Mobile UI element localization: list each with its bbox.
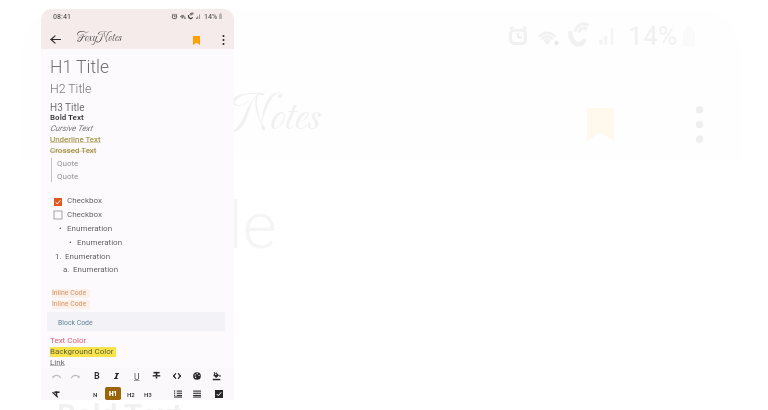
staticText: Checkbox [67,210,103,219]
staticText: Inline Code [52,289,87,297]
staticText: H1 Title [50,57,110,78]
staticText: Cursive Text [50,124,93,133]
staticText: Enumeration [65,252,111,261]
button[interactable]: Heading 2 [123,386,138,400]
button[interactable]: Text colour [189,368,204,383]
staticText: 1. [55,252,62,261]
staticText: 08:41 [67,20,135,51]
staticText: 14% [628,20,678,51]
staticText: Underline Text [50,135,101,144]
button[interactable]: Checklist [211,386,226,400]
staticText: H1 [109,390,118,398]
staticText: Block Code [58,319,93,327]
staticText: U [134,372,140,382]
staticText: H2 [127,391,135,398]
staticText: H3 Title [57,354,186,398]
staticText: H1 Title [57,188,277,264]
button[interactable]: Numbered list [170,386,185,400]
button[interactable]: Bookmark [563,87,637,161]
button[interactable]: Heading 3 [140,386,155,400]
button[interactable]: More options [213,30,233,50]
button[interactable]: Back [45,29,65,49]
staticText: H3 [144,391,152,398]
staticText: FoxyNotes [77,31,122,46]
staticText: B [94,371,100,382]
button[interactable]: Checkbox [54,211,62,219]
button[interactable]: Back [35,84,109,158]
button[interactable]: Strikethrough [149,368,164,383]
staticText: Bold Text [50,113,84,122]
staticText: 08:41 [53,12,72,20]
button[interactable]: Fill colour [209,368,224,383]
staticText: Checkbox [67,196,103,205]
staticText: Bold Text [57,397,183,410]
button[interactable]: Italic [109,368,124,383]
staticText: H3 Title [50,102,85,114]
staticText: Inline Code [52,300,87,308]
staticText: Enumeration [67,224,113,233]
staticText: 14% [204,12,218,20]
button[interactable]: Checkbox [54,198,62,206]
button[interactable]: Bold [89,368,104,383]
button[interactable]: Clear formatting [48,386,63,400]
staticText: N [93,391,98,398]
staticText: Quote [57,172,79,181]
staticText: Enumeration [77,238,123,247]
button[interactable]: Normal text [88,386,103,400]
button[interactable]: Underline [129,368,144,383]
button[interactable]: Undo [49,368,64,383]
button[interactable]: Inline code [169,368,184,383]
button[interactable]: Redo [68,368,83,383]
staticText: Crossed Text [50,146,97,155]
staticText: H2 Title [57,281,212,335]
staticText: • [59,224,62,233]
staticText: Enumeration [73,265,119,274]
staticText: Link [50,358,65,367]
staticText: • [69,238,72,247]
button[interactable]: H1 [105,387,121,400]
staticText: Quote [57,159,79,168]
staticText: FoxyNotes [154,90,320,146]
staticText: a. [63,265,70,274]
button[interactable]: Bulleted list [189,386,204,400]
button[interactable]: Bookmark [186,30,206,50]
staticText: Text Color [50,336,87,345]
staticText: H2 Title [50,82,92,96]
staticText: Background Color [50,347,114,356]
